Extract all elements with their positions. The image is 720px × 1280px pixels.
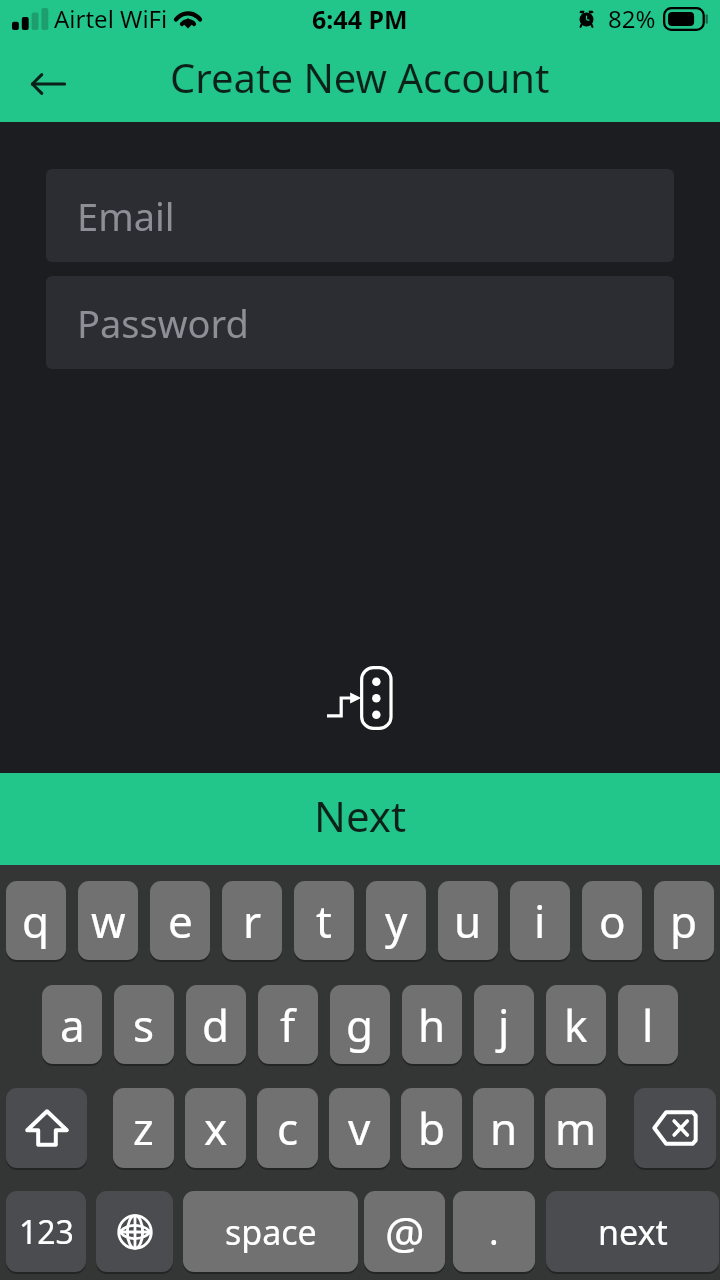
staticText: h (418, 995, 446, 1055)
staticText: x (204, 1098, 228, 1158)
staticText: u (454, 891, 482, 951)
button[interactable]: m (545, 1088, 606, 1168)
staticText: 6:44 PM (312, 2, 408, 36)
button[interactable]: Shift (6, 1088, 87, 1168)
button[interactable]: q (6, 881, 66, 960)
button[interactable]: u (438, 881, 498, 960)
button[interactable]: 123 (6, 1191, 86, 1272)
button[interactable]: n (473, 1088, 534, 1168)
staticText: q (22, 891, 50, 951)
staticText: v (348, 1098, 371, 1158)
button[interactable]: a (42, 985, 102, 1064)
staticText: @ (385, 1202, 425, 1262)
staticText: p (670, 891, 698, 951)
staticText: t (316, 891, 332, 951)
button[interactable]: @ (364, 1191, 445, 1272)
staticText: r (243, 891, 262, 951)
button[interactable]: Backspace (634, 1088, 716, 1168)
staticText: . (489, 1207, 499, 1256)
staticText: y (385, 891, 408, 951)
button[interactable]: s (114, 985, 174, 1064)
button[interactable]: e (150, 881, 210, 960)
button[interactable]: c (257, 1088, 318, 1168)
staticText: l (642, 995, 654, 1055)
staticText: j (498, 995, 510, 1055)
staticText: Email (77, 190, 175, 242)
staticText: o (599, 891, 626, 951)
button[interactable]: k (546, 985, 606, 1064)
staticText: k (564, 995, 588, 1055)
staticText: w (91, 891, 126, 951)
staticText: c (277, 1098, 299, 1158)
button[interactable]: h (402, 985, 462, 1064)
button[interactable]: x (185, 1088, 246, 1168)
button[interactable]: o (582, 881, 642, 960)
staticText: Airtel WiFi (54, 2, 168, 35)
button[interactable]: p (654, 881, 714, 960)
button[interactable]: r (222, 881, 282, 960)
staticText: b (418, 1098, 446, 1158)
staticText: Create New Account (170, 50, 550, 104)
button[interactable]: d (186, 985, 246, 1064)
staticText: d (202, 995, 230, 1055)
button[interactable]: Next (0, 773, 720, 865)
staticText: 123 (19, 1210, 74, 1254)
button[interactable]: . (453, 1191, 535, 1272)
staticText: s (133, 995, 155, 1055)
button[interactable]: Password (46, 276, 674, 369)
button[interactable]: y (366, 881, 426, 960)
staticText: 82% (608, 2, 656, 35)
button[interactable]: b (401, 1088, 462, 1168)
button[interactable]: v (329, 1088, 390, 1168)
button[interactable]: j (474, 985, 534, 1064)
staticText: next (598, 1209, 668, 1255)
button[interactable]: Back (22, 62, 74, 106)
staticText: z (133, 1098, 154, 1158)
button[interactable]: z (113, 1088, 174, 1168)
button[interactable]: i (510, 881, 570, 960)
staticText: Next (314, 787, 407, 844)
staticText: g (346, 995, 374, 1055)
button[interactable]: f (258, 985, 318, 1064)
staticText: space (225, 1209, 317, 1255)
button[interactable]: l (618, 985, 678, 1064)
button[interactable]: w (78, 881, 138, 960)
staticText: a (60, 995, 85, 1055)
button[interactable]: space (183, 1191, 358, 1272)
staticText: e (168, 891, 193, 951)
staticText: i (534, 891, 546, 951)
staticText: f (280, 995, 296, 1055)
button[interactable]: Change language (96, 1191, 173, 1272)
button[interactable]: g (330, 985, 390, 1064)
button[interactable]: next (546, 1191, 719, 1272)
button[interactable]: t (294, 881, 354, 960)
button[interactable]: Email (46, 169, 674, 262)
staticText: m (555, 1098, 597, 1158)
staticText: n (490, 1098, 518, 1158)
staticText: Password (77, 297, 249, 349)
